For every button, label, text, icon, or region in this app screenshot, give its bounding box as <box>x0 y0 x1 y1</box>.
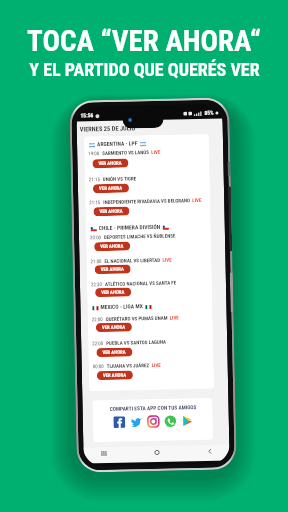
staticText: PUEBLA VS SANTOS LAGUNA <box>106 339 166 346</box>
staticText: DEPORTES LIMACHE VS ÑUBLENSE <box>104 232 176 240</box>
staticText: 22:30 <box>91 281 103 287</box>
staticText: EL NACIONAL VS LIBERTAD <box>104 257 160 264</box>
staticText: VER AHORA <box>99 186 123 192</box>
button[interactable]: VER AHORA <box>96 322 132 332</box>
staticText: TIJUANA VS JUÁREZ <box>107 362 150 369</box>
staticText: VER AHORA <box>101 290 125 296</box>
button[interactable]: Google Play <box>181 414 194 427</box>
staticText: VER AHORA <box>103 373 127 379</box>
button[interactable]: Instagram <box>147 415 160 428</box>
staticText: VER AHORA <box>99 209 123 215</box>
staticText: LIVE <box>170 314 180 321</box>
staticText: COMPARTI ESTA APP CON TUS AMIGOS <box>109 404 197 412</box>
staticText: LIVE <box>151 149 161 155</box>
staticText: 20:00 <box>90 234 102 240</box>
staticText: 19:00 <box>88 150 100 156</box>
button[interactable]: VER AHORA <box>95 287 131 297</box>
staticText: 21:15 <box>89 176 101 182</box>
staticText: VER AHORA <box>101 267 125 273</box>
staticText: VER AHORA <box>102 350 126 356</box>
staticText: VER AHORA <box>100 244 124 250</box>
button[interactable]: Home <box>150 446 163 458</box>
button[interactable]: VER AHORA <box>93 183 129 193</box>
staticText: ATLÉTICO NACIONAL VS SANTA FE <box>105 279 177 287</box>
button[interactable]: VER AHORA <box>94 241 130 251</box>
staticText: 22:00 <box>92 316 104 322</box>
staticText: 00:00 <box>93 363 105 369</box>
staticText: 22:00 <box>92 340 104 346</box>
staticText: LIVE <box>152 362 162 368</box>
button[interactable]: VER AHORA <box>95 264 131 274</box>
staticText: VER AHORA <box>98 161 122 167</box>
button[interactable]: Recents <box>97 447 110 459</box>
button[interactable]: Back <box>203 445 216 457</box>
staticText: SARMIENTO VS LANÚS <box>102 149 149 156</box>
staticText: 21:00 <box>90 258 102 264</box>
staticText: UNIÓN VS TIGRE <box>103 175 137 182</box>
button[interactable]: WhatsApp <box>164 414 177 428</box>
staticText: LIVE <box>192 197 202 203</box>
staticText: QUERÉTARO VS PUMAS UNAM <box>106 315 168 322</box>
button[interactable]: VER AHORA <box>93 206 130 216</box>
staticText: ARGENTINA - LPF <box>97 140 138 148</box>
staticText: MEXICO - LIGA MX <box>100 303 143 311</box>
button[interactable]: Facebook <box>113 416 126 429</box>
button[interactable]: VER AHORA <box>96 347 132 357</box>
staticText: Y EL PARTIDO QUE QUERÉS VER <box>29 59 260 80</box>
staticText: 15:56 <box>80 112 93 119</box>
staticText: 85% <box>204 110 214 117</box>
staticText: CHILE - PRIMERA DIVISIÓN <box>99 224 161 232</box>
staticText: VIERNES 25 DE JULIO <box>80 124 136 133</box>
staticText: 21:15 <box>89 199 101 205</box>
staticText: LIVE <box>162 257 172 263</box>
button[interactable]: Twitter <box>130 415 143 428</box>
staticText: TOCA “VER AHORA“ <box>27 24 261 58</box>
button[interactable]: VER AHORA <box>97 370 133 380</box>
staticText: VER AHORA <box>102 325 126 331</box>
button[interactable]: VER AHORA <box>92 158 129 168</box>
staticText: INDEPENDIENTE RIVADAVIA VS BELGRANO <box>103 197 190 205</box>
